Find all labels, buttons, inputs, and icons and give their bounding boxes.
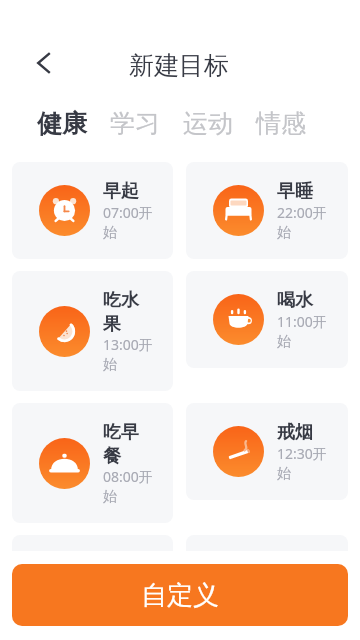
staticText: 18:00开始 bbox=[103, 576, 155, 614]
staticText: 喝水 bbox=[277, 289, 313, 312]
staticText: 新建目标 bbox=[129, 50, 229, 81]
staticText: 吃水果 bbox=[103, 289, 155, 335]
staticText: 13:00开始 bbox=[103, 335, 155, 373]
staticText: 自定义 bbox=[141, 579, 219, 612]
staticText: 运动 bbox=[103, 553, 139, 576]
button[interactable]: 情感 bbox=[244, 98, 317, 142]
button[interactable]: 读书 bbox=[186, 535, 348, 632]
button[interactable]: 运动 bbox=[12, 535, 173, 632]
button[interactable]: 学习 bbox=[98, 98, 171, 142]
staticText: 运动 bbox=[183, 108, 233, 139]
staticText: 22:00开始 bbox=[277, 203, 329, 241]
staticText: 11:00开始 bbox=[277, 312, 329, 350]
staticText: 学习 bbox=[110, 108, 160, 139]
staticText: 戒烟 bbox=[277, 421, 313, 444]
staticText: 早起 bbox=[103, 180, 139, 203]
button[interactable]: 自定义 bbox=[12, 564, 348, 626]
button[interactable]: 运动 bbox=[171, 98, 244, 142]
staticText: 早睡 bbox=[277, 180, 313, 203]
staticText: 12:30开始 bbox=[277, 444, 329, 482]
button[interactable]: 健康 bbox=[25, 98, 98, 142]
button[interactable]: 早起 bbox=[12, 162, 173, 259]
staticText: 健康 bbox=[37, 108, 87, 139]
button[interactable]: 吃水果 bbox=[12, 271, 173, 391]
button[interactable]: Back bbox=[27, 46, 61, 80]
staticText: 08:00开始 bbox=[103, 467, 155, 505]
staticText: 07:00开始 bbox=[103, 203, 155, 241]
staticText: 读书 bbox=[277, 553, 313, 576]
staticText: 吃早餐 bbox=[103, 421, 155, 467]
button[interactable]: 早睡 bbox=[186, 162, 348, 259]
button[interactable]: 吃早餐 bbox=[12, 403, 173, 523]
button[interactable]: 喝水 bbox=[186, 271, 348, 368]
button[interactable]: 戒烟 bbox=[186, 403, 348, 500]
staticText: 情感 bbox=[256, 108, 306, 139]
